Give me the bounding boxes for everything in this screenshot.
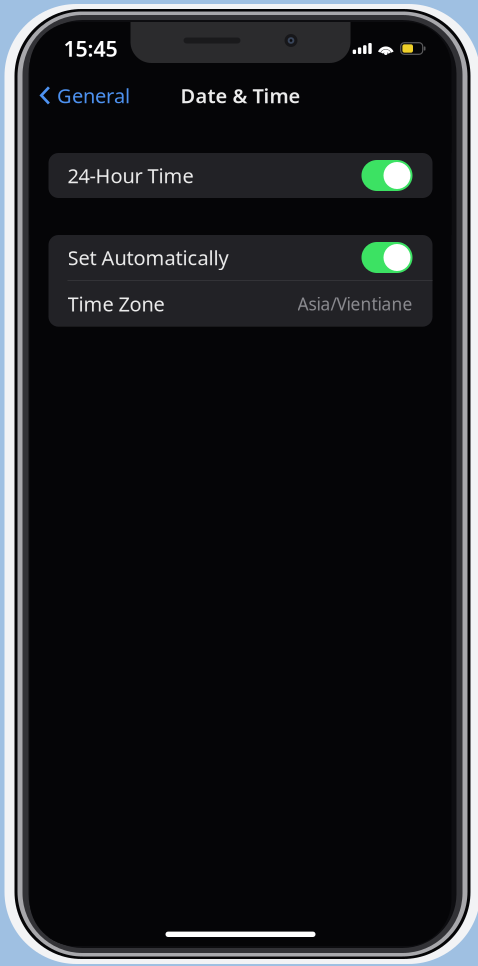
- staticText: General: [57, 82, 130, 109]
- staticText: 15:45: [63, 34, 117, 63]
- staticText: Time Zone: [67, 290, 164, 317]
- staticText: Date & Time: [180, 82, 300, 109]
- button[interactable]: Time Zone: [48, 281, 432, 327]
- button[interactable]: Set Automatically: [48, 235, 432, 280]
- button[interactable]: 24-Hour Time: [48, 153, 432, 198]
- staticText: 24-Hour Time: [67, 162, 193, 189]
- staticText: Asia/Vientiane: [297, 292, 412, 315]
- staticText: Set Automatically: [67, 244, 228, 271]
- button[interactable]: General: [29, 75, 130, 116]
